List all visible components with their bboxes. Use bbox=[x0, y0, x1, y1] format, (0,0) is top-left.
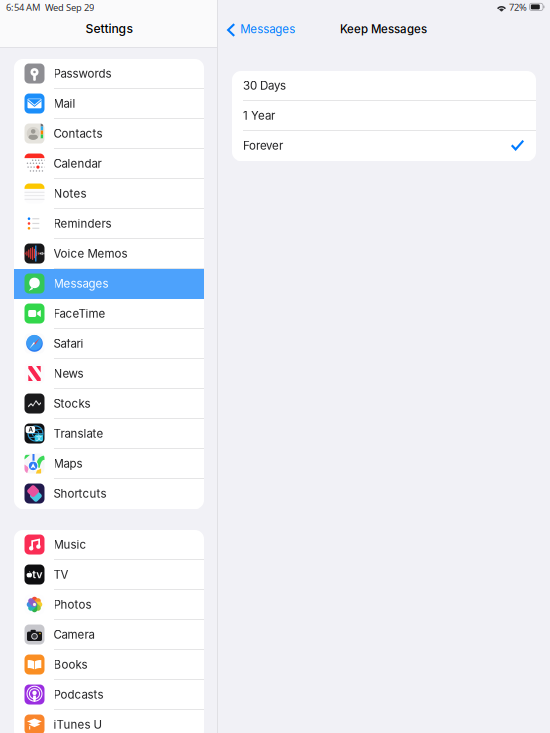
button[interactable]: Books bbox=[14, 650, 204, 680]
button[interactable]: iTunes U bbox=[14, 710, 204, 733]
button[interactable]: Reminders bbox=[14, 209, 204, 239]
button[interactable]: Passwords bbox=[14, 59, 204, 89]
staticText: tv bbox=[32, 568, 42, 581]
staticText: Podcasts bbox=[53, 688, 103, 701]
staticText: Stocks bbox=[53, 397, 90, 410]
button[interactable]: News bbox=[14, 359, 204, 389]
staticText: 30 Days bbox=[243, 79, 286, 92]
button[interactable]: tv bbox=[14, 560, 204, 590]
button[interactable]: Mail bbox=[14, 89, 204, 119]
staticText: 6:54 AM bbox=[6, 1, 40, 13]
staticText: A bbox=[28, 426, 32, 433]
staticText: Calendar bbox=[53, 157, 101, 170]
button[interactable]: Contacts bbox=[14, 119, 204, 149]
staticText: Voice Memos bbox=[53, 247, 127, 260]
button[interactable]: Podcasts bbox=[14, 680, 204, 710]
staticText: 文 bbox=[36, 434, 42, 442]
staticText: Contacts bbox=[53, 127, 102, 140]
staticText: Forever bbox=[243, 139, 283, 152]
staticText: News bbox=[53, 367, 83, 380]
staticText: Passwords bbox=[53, 67, 111, 80]
staticText: Mail bbox=[53, 97, 75, 110]
button[interactable]: Photos bbox=[14, 590, 204, 620]
button[interactable]: Maps bbox=[14, 449, 204, 479]
button[interactable]: Forever bbox=[232, 131, 536, 161]
button[interactable]: 1 Year bbox=[232, 101, 536, 131]
staticText: Messages bbox=[240, 22, 295, 36]
button[interactable]: Stocks bbox=[14, 389, 204, 419]
button[interactable]: Messages bbox=[219, 16, 303, 42]
button[interactable]: Safari bbox=[14, 329, 204, 359]
staticText: Photos bbox=[53, 598, 91, 611]
staticText: Keep Messages bbox=[340, 22, 427, 36]
button[interactable]: Notes bbox=[14, 179, 204, 209]
staticText: TV bbox=[53, 568, 68, 581]
button[interactable]: FaceTime bbox=[14, 299, 204, 329]
staticText: Settings bbox=[85, 21, 133, 36]
staticText: Books bbox=[53, 658, 87, 671]
staticText: Safari bbox=[53, 337, 83, 350]
button[interactable]: Camera bbox=[14, 620, 204, 650]
staticText: Shortcuts bbox=[53, 487, 106, 500]
staticText: Reminders bbox=[53, 217, 111, 230]
staticText: Wed Sep 29 bbox=[45, 1, 94, 14]
staticText: Music bbox=[53, 538, 86, 551]
button[interactable]: Music bbox=[14, 530, 204, 560]
button[interactable]: A bbox=[14, 419, 204, 449]
staticText: 1 Year bbox=[243, 109, 275, 122]
staticText: Messages bbox=[53, 277, 108, 290]
staticText: Notes bbox=[53, 187, 86, 200]
staticText: 72% bbox=[509, 1, 527, 13]
staticText: FaceTime bbox=[53, 307, 105, 320]
staticText: iTunes U bbox=[53, 718, 102, 731]
button[interactable]: Calendar bbox=[14, 149, 204, 179]
button[interactable]: 30 Days bbox=[232, 71, 536, 101]
staticText: Translate bbox=[53, 427, 103, 440]
staticText: Maps bbox=[53, 457, 82, 470]
staticText: Camera bbox=[53, 628, 94, 641]
button[interactable]: Messages bbox=[14, 269, 204, 299]
button[interactable]: Shortcuts bbox=[14, 479, 204, 509]
button[interactable]: Voice Memos bbox=[14, 239, 204, 269]
